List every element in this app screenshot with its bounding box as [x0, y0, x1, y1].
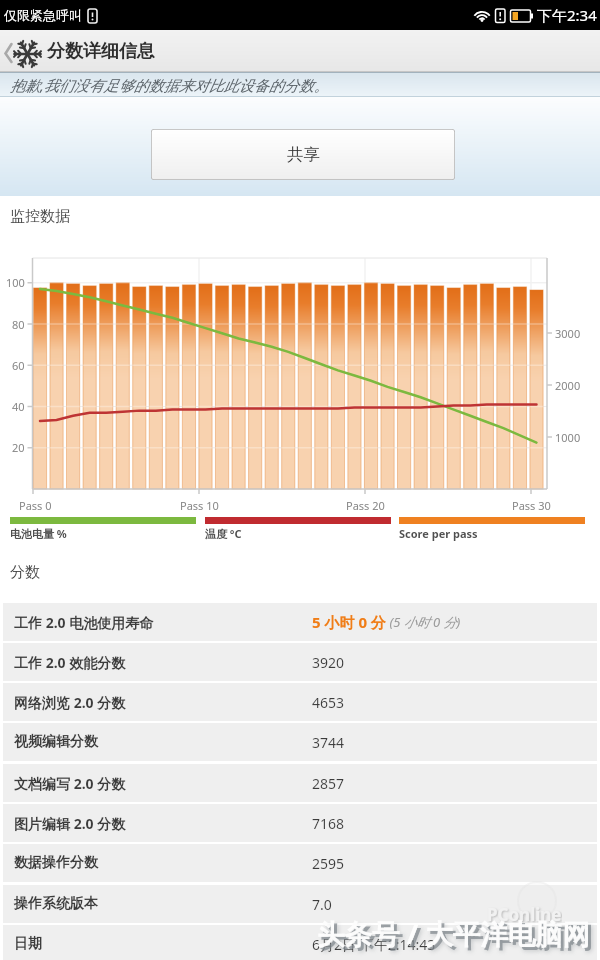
staticText: 仅限紧急呼叫 — [4, 7, 82, 23]
staticText: 7.0 — [312, 895, 332, 914]
staticText: 数据操作分数 — [14, 854, 98, 872]
button[interactable] — [0, 30, 44, 72]
staticText: Pass 20 — [346, 498, 385, 513]
staticText: 头条号 / 大平洋电脑网 — [317, 915, 591, 953]
staticText: 共享 — [287, 144, 320, 165]
staticText: 工作 2.0 电池使用寿命 — [14, 613, 154, 632]
staticText: 3920 — [312, 653, 345, 672]
staticText: (5 小时 0 分) — [386, 613, 461, 631]
staticText: 2000 — [555, 378, 581, 393]
button[interactable]: 操作系统版本 — [3, 885, 597, 923]
staticText: 图片编辑 2.0 分数 — [14, 814, 126, 833]
staticText: 抱歉,我们没有足够的数据来对比此设备的分数。 — [10, 75, 329, 95]
staticText: Score per pass — [399, 526, 478, 541]
staticText: 日期 — [14, 935, 42, 953]
staticText: 电池电量 % — [10, 526, 67, 541]
staticText: 工作 2.0 效能分数 — [14, 653, 126, 672]
staticText: 40 — [12, 399, 25, 414]
button[interactable]: 日期 — [3, 925, 597, 960]
staticText: 2857 — [312, 774, 345, 793]
staticText: 7168 — [312, 814, 345, 833]
staticText: 3744 — [312, 733, 345, 752]
staticText: 5 小时 0 分 — [312, 612, 386, 632]
staticText: Pass 0 — [19, 498, 52, 513]
staticText: 1000 — [555, 430, 581, 445]
button[interactable]: 工作 2.0 电池使用寿命 — [3, 603, 597, 641]
button[interactable]: 视频编辑分数 — [3, 723, 597, 761]
staticText: 2595 — [312, 854, 345, 873]
button[interactable]: 工作 2.0 效能分数 — [3, 643, 597, 681]
staticText: 头条号 / 大平洋电脑网 — [320, 918, 594, 956]
staticText: 100 — [6, 275, 25, 290]
staticText: 60 — [12, 358, 25, 373]
button[interactable]: 文档编写 2.0 分数 — [3, 764, 597, 802]
staticText: 6月2日 下午2:14:43 — [312, 935, 436, 954]
staticText: 温度 °C — [205, 526, 242, 541]
button[interactable]: 图片编辑 2.0 分数 — [3, 804, 597, 842]
staticText: 分数 — [10, 563, 40, 582]
staticText: Pass 10 — [180, 498, 219, 513]
staticText: 20 — [12, 440, 25, 455]
staticText: PConline — [487, 903, 562, 925]
staticText: 操作系统版本 — [14, 895, 98, 913]
staticText: 分数详细信息 — [47, 40, 155, 63]
button[interactable]: 网络浏览 2.0 分数 — [3, 683, 597, 721]
staticText: 网络浏览 2.0 分数 — [14, 693, 126, 712]
staticText: Pass 30 — [512, 498, 551, 513]
staticText: 80 — [12, 317, 25, 332]
staticText: 文档编写 2.0 分数 — [14, 774, 126, 793]
button[interactable]: 数据操作分数 — [3, 844, 597, 882]
staticText: 下午2:34 — [537, 5, 597, 25]
staticText: 监控数据 — [10, 207, 70, 226]
staticText: 4653 — [312, 693, 345, 712]
button[interactable]: 共享 — [151, 129, 455, 180]
staticText: 视频编辑分数 — [14, 733, 98, 751]
staticText: 3000 — [555, 326, 581, 341]
